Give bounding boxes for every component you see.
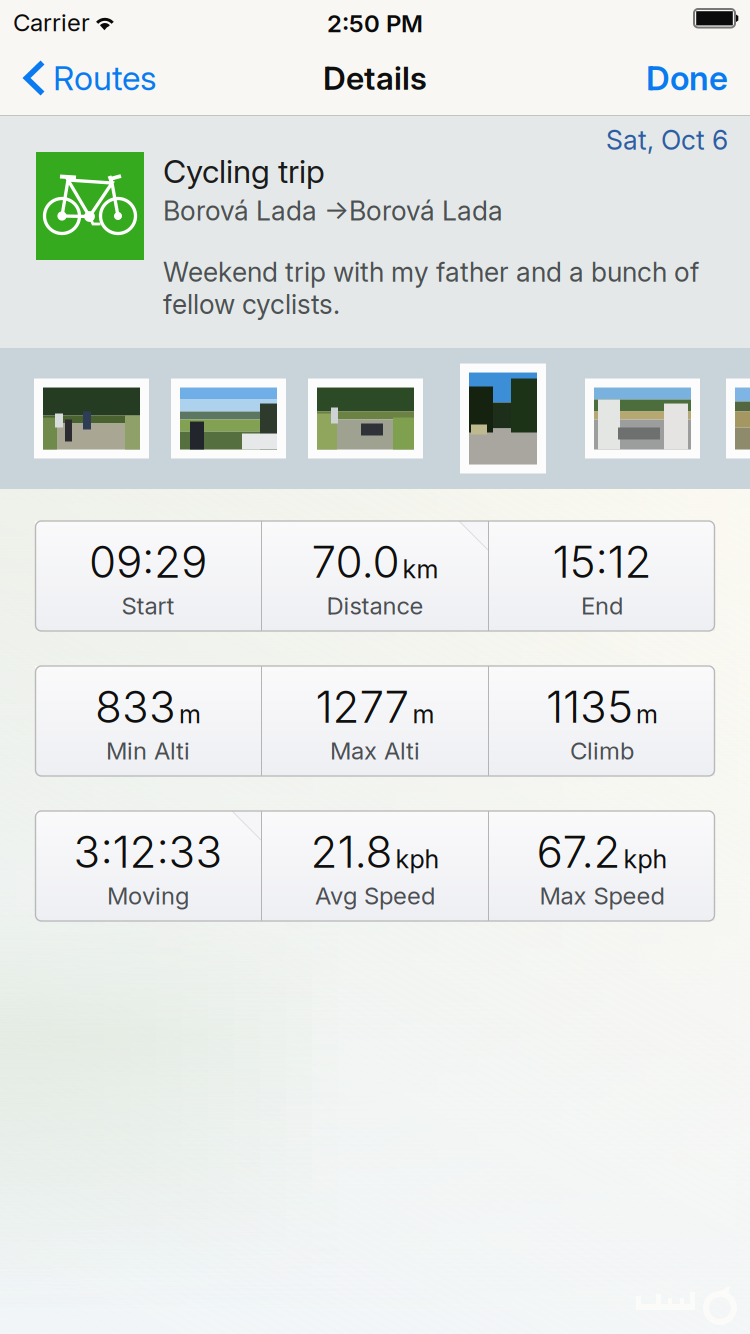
staticText: Weekend trip with my father and a bunch … [163,256,699,320]
button[interactable]: 1135 [489,666,715,776]
button[interactable]: 21.8 [262,811,488,921]
staticText: Routes [53,58,157,98]
staticText: 833 [95,680,176,733]
staticText: m [412,699,434,729]
staticText: Climb [570,736,634,765]
staticText: 3:12:33 [73,825,222,878]
button[interactable]: Done [630,40,750,116]
staticText: 67.2 [536,825,620,878]
staticText: 1277 [315,680,409,733]
button[interactable]: 67.2 [489,811,715,921]
staticText: Max Alti [330,736,420,765]
staticText: 2:50 PM [327,9,423,38]
staticText: 15:12 [552,535,651,588]
staticText: Moving [107,881,189,910]
button[interactable]: Photo 3 [308,378,423,458]
staticText: End [581,591,623,620]
staticText: m [636,699,658,729]
button[interactable]: Photo 5 [585,378,700,458]
button[interactable]: Routes [0,40,171,116]
button[interactable]: 70.0 [262,521,488,631]
button[interactable]: 15:12 [489,521,715,631]
staticText: m [179,699,201,729]
staticText: 70.0 [311,535,399,588]
staticText: kph [623,844,667,874]
button[interactable]: 09:29 [35,521,261,631]
button[interactable]: Photo 1 [34,378,149,458]
button[interactable]: Photo 6 [726,378,750,458]
staticText: Cycling trip [163,152,325,191]
staticText: Min Alti [106,736,190,765]
staticText: 1135 [546,680,633,733]
button[interactable]: Photo 2 [171,378,286,458]
staticText: Distance [326,591,423,620]
staticText: Carrier [13,8,90,37]
staticText: Max Speed [539,881,664,910]
staticText: km [402,554,438,584]
staticText: Avg Speed [315,881,435,910]
staticText: Borová Lada →Borová Lada [163,195,503,227]
staticText: 21.8 [310,825,392,878]
button[interactable]: 3:12:33 [35,811,261,921]
staticText: 09:29 [89,535,207,588]
staticText: Done [646,58,728,98]
button[interactable]: 1277 [262,666,488,776]
staticText: kph [395,844,439,874]
staticText: Start [121,591,174,620]
button[interactable]: 833 [35,666,261,776]
button[interactable]: Photo 4 [460,363,546,473]
staticText: Sat, Oct 6 [606,124,728,156]
staticText: Details [323,59,427,97]
